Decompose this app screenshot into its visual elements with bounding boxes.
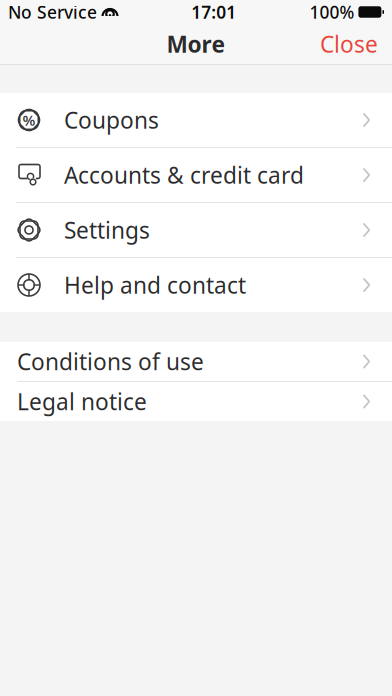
staticText: Close [320, 29, 378, 59]
button[interactable]: Settings [0, 203, 392, 257]
staticText: Help and contact [64, 270, 246, 300]
button[interactable]: Close [306, 21, 392, 67]
staticText: Settings [64, 215, 150, 245]
button[interactable]: % [0, 93, 392, 147]
staticText: Accounts & credit card [64, 160, 304, 190]
staticText: Conditions of use [17, 346, 204, 376]
staticText: 100% [309, 0, 354, 23]
button[interactable]: Legal notice [0, 382, 392, 421]
staticText: More [166, 29, 225, 59]
staticText: Coupons [64, 105, 159, 135]
staticText: 17:01 [191, 0, 236, 23]
button[interactable]: Conditions of use [0, 342, 392, 381]
button[interactable]: Accounts & credit card [0, 148, 392, 202]
staticText: Legal notice [17, 386, 147, 416]
button[interactable]: Help and contact [0, 258, 392, 312]
staticText: % [22, 110, 35, 130]
staticText: No Service [8, 0, 97, 23]
